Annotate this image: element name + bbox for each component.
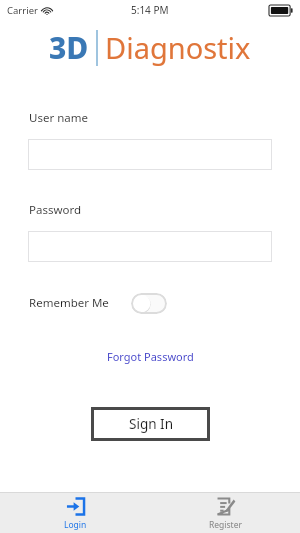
staticText: Remember Me [29, 295, 109, 311]
staticText: Login [64, 519, 87, 531]
button[interactable] [28, 231, 272, 262]
button[interactable]: Login [0, 493, 150, 533]
staticText: 3D [49, 27, 89, 68]
staticText: Password [29, 202, 82, 218]
button[interactable]: Forgot Password [99, 346, 202, 367]
staticText: Register [209, 519, 242, 531]
staticText: Forgot Password [107, 349, 194, 364]
button[interactable]: Register [150, 493, 300, 533]
button[interactable] [28, 139, 272, 170]
staticText: User name [29, 110, 88, 126]
button[interactable]: Remember Me toggle [131, 293, 167, 314]
staticText: 5:14 PM [131, 3, 169, 17]
staticText: Diagnostix [105, 28, 251, 67]
staticText: Sign In [129, 415, 173, 433]
staticText: Carrier [7, 4, 38, 17]
button[interactable]: Sign In [91, 407, 210, 441]
